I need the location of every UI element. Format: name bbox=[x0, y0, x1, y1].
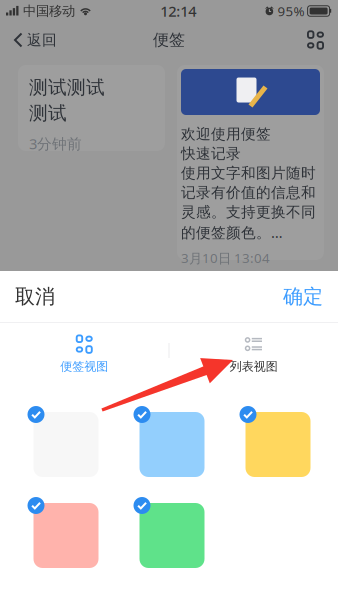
staticText: 中国移动 bbox=[19, 3, 79, 19]
staticText: 测试测试 测试 bbox=[29, 76, 105, 125]
button[interactable] bbox=[239, 406, 310, 477]
staticText: 取消 bbox=[15, 284, 55, 309]
button[interactable]: 欢迎使用便签 快速记录 使用文字和图片随时 记录有价值的信息和 灵感。支持更换不… bbox=[177, 65, 324, 260]
staticText: 便签 bbox=[153, 30, 185, 50]
staticText: 3分钟前 bbox=[29, 134, 82, 153]
button[interactable] bbox=[27, 406, 98, 477]
button[interactable]: 便签视图 bbox=[0, 318, 168, 383]
staticText: 12:14 bbox=[160, 1, 196, 21]
staticText: 便签视图 bbox=[60, 359, 108, 374]
button[interactable]: 切换视图 bbox=[297, 24, 334, 56]
staticText: 3月10日 13:04 bbox=[181, 249, 270, 267]
button[interactable] bbox=[133, 406, 204, 477]
button[interactable] bbox=[133, 497, 204, 568]
button[interactable]: 测试测试 测试 bbox=[18, 65, 165, 151]
button[interactable] bbox=[27, 497, 98, 568]
button[interactable]: 取消 bbox=[0, 269, 70, 324]
button[interactable]: 返回 bbox=[4, 25, 67, 55]
staticText: 95% bbox=[275, 2, 308, 20]
button[interactable]: 确定 bbox=[268, 269, 338, 324]
staticText: 欢迎使用便签 快速记录 使用文字和图片随时 记录有价值的信息和 灵感。支持更换不… bbox=[181, 125, 316, 242]
button[interactable]: 列表视图 bbox=[169, 318, 338, 383]
staticText: 列表视图 bbox=[230, 359, 278, 374]
staticText: 返回 bbox=[27, 31, 57, 49]
staticText: 确定 bbox=[283, 284, 323, 309]
